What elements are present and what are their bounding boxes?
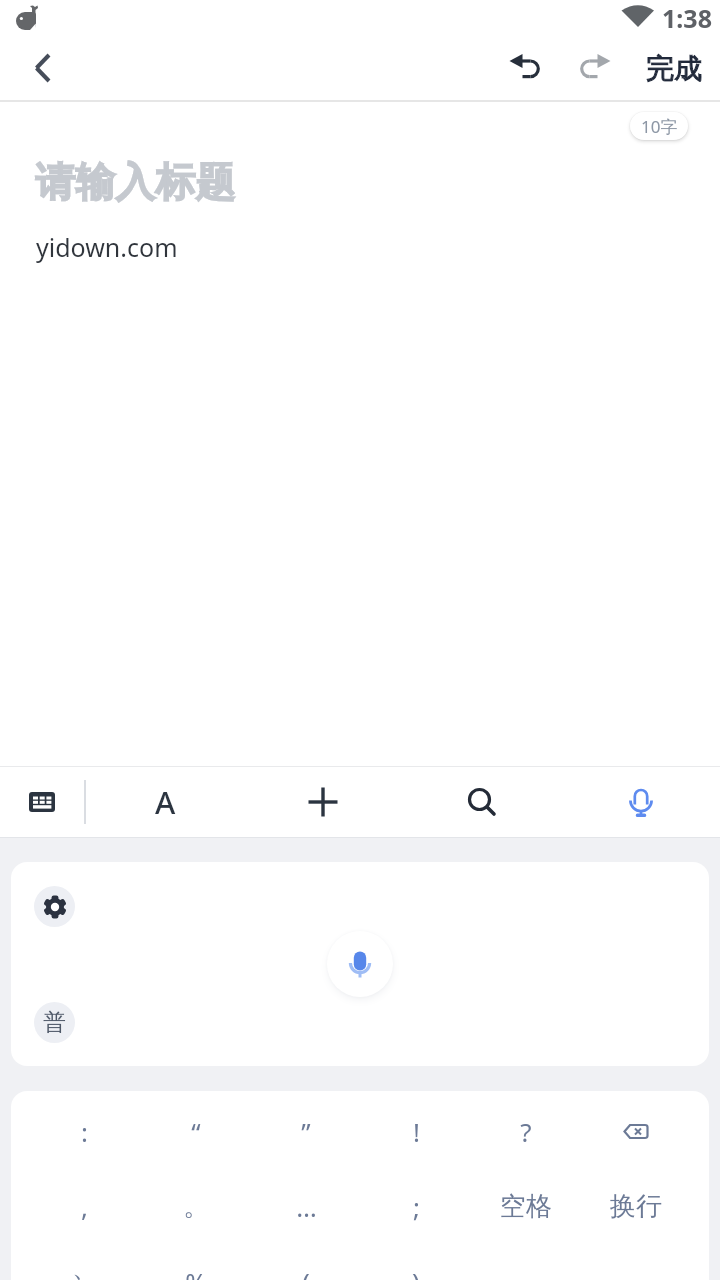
staticText: 1:38 xyxy=(662,1,712,35)
button[interactable]: … xyxy=(251,1169,361,1244)
button[interactable]: 完成 xyxy=(646,51,720,86)
staticText: 完成 xyxy=(646,51,702,86)
button[interactable]: ? xyxy=(471,1094,581,1169)
staticText: 请输入标题 xyxy=(36,156,236,206)
staticText: ” xyxy=(301,1114,311,1149)
staticText: 10字 xyxy=(641,115,678,138)
staticText: 普 xyxy=(43,1008,66,1037)
staticText: 。 xyxy=(183,1190,209,1223)
staticText: 请输入标题 xyxy=(36,156,236,206)
staticText: ! xyxy=(413,1114,420,1149)
button[interactable] xyxy=(574,46,618,90)
button[interactable]: ; xyxy=(361,1169,471,1244)
button[interactable] xyxy=(581,1094,691,1169)
button[interactable]: A xyxy=(86,767,244,837)
button[interactable]: 。 xyxy=(140,1169,251,1244)
button[interactable] xyxy=(327,931,393,997)
staticText: A xyxy=(155,781,176,823)
staticText: 、 xyxy=(72,1252,98,1280)
button[interactable] xyxy=(561,767,720,837)
button[interactable] xyxy=(502,46,546,90)
staticText: ; xyxy=(413,1189,420,1224)
staticText: yidown.com xyxy=(36,230,178,264)
button[interactable] xyxy=(402,767,561,837)
button[interactable]: 、 xyxy=(29,1244,140,1280)
button[interactable]: , xyxy=(29,1169,140,1244)
staticText: , xyxy=(81,1189,88,1224)
staticText: “ xyxy=(191,1114,201,1149)
staticText: ( xyxy=(302,1264,310,1280)
button[interactable]: ) xyxy=(361,1244,471,1280)
button[interactable]: 换行 xyxy=(581,1169,691,1244)
button[interactable] xyxy=(22,48,62,88)
button[interactable]: ! xyxy=(361,1094,471,1169)
staticText: 空格 xyxy=(500,1190,552,1223)
staticText: : xyxy=(81,1114,88,1149)
staticText: % xyxy=(185,1264,207,1280)
button[interactable]: 普 xyxy=(34,1002,75,1043)
button[interactable] xyxy=(34,886,75,927)
button[interactable]: “ xyxy=(140,1094,251,1169)
button[interactable]: : xyxy=(29,1094,140,1169)
button[interactable]: 空格 xyxy=(471,1169,581,1244)
staticText: … xyxy=(296,1189,317,1224)
staticText: ) xyxy=(412,1264,420,1280)
staticText: ? xyxy=(520,1114,532,1149)
button[interactable]: % xyxy=(140,1244,251,1280)
staticText: 换行 xyxy=(610,1190,662,1223)
button[interactable] xyxy=(244,767,402,837)
button[interactable] xyxy=(0,767,84,837)
staticText: 完成 xyxy=(646,51,702,86)
button[interactable]: ” xyxy=(251,1094,361,1169)
button[interactable]: ( xyxy=(251,1244,361,1280)
